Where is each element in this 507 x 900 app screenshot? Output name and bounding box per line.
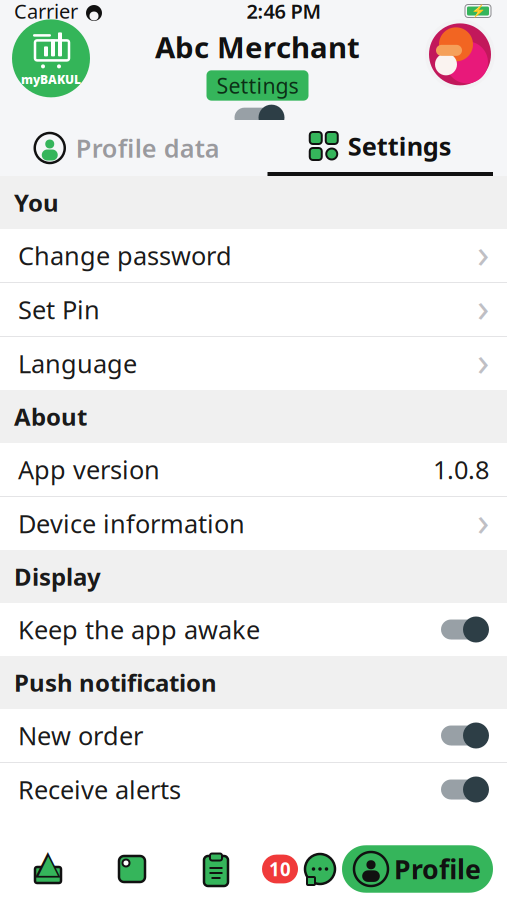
staticText: Keep the app awake: [18, 613, 260, 646]
staticText: Profile: [394, 851, 481, 887]
button[interactable]: Receive alerts: [437, 776, 489, 802]
button[interactable]: Account avatar: [425, 19, 495, 89]
staticText: Set Pin: [18, 293, 100, 326]
staticText: ›: [477, 226, 489, 279]
staticText: ›: [477, 494, 489, 547]
button[interactable]: Settings: [253, 120, 507, 176]
staticText: ▲: [35, 843, 61, 881]
staticText: ›: [477, 280, 489, 333]
staticText: About: [14, 401, 87, 432]
staticText: Display: [14, 561, 101, 592]
staticText: Language: [18, 347, 137, 380]
button[interactable]: Messages, 10 unread: [258, 850, 342, 888]
staticText: App version: [18, 453, 160, 486]
button[interactable]: Toggle settings: [230, 105, 284, 131]
staticText: Abc Merchant: [155, 27, 360, 66]
staticText: Device information: [18, 507, 245, 540]
button[interactable]: New order: [437, 722, 489, 748]
button[interactable]: Keep the app awake: [437, 616, 489, 642]
staticText: Push notification: [14, 667, 217, 698]
staticText: Receive alerts: [18, 773, 181, 806]
staticText: 2:46 PM: [246, 0, 321, 24]
staticText: Settings: [216, 71, 298, 100]
button[interactable]: Profile: [342, 845, 493, 893]
staticText: Carrier: [14, 0, 78, 24]
button[interactable]: Home: [6, 852, 90, 886]
button[interactable]: Language: [0, 337, 507, 390]
button[interactable]: Set Pin: [0, 283, 507, 336]
staticText: ›: [477, 334, 489, 387]
staticText: ▲: [36, 846, 59, 880]
staticText: 10: [269, 857, 291, 881]
button[interactable]: Profile data: [0, 120, 253, 176]
staticText: Settings: [348, 129, 452, 163]
staticText: You: [14, 187, 59, 218]
staticText: myBAKUL: [21, 71, 81, 87]
staticText: Profile data: [76, 131, 220, 165]
staticText: New order: [18, 719, 143, 752]
button[interactable]: Offers: [90, 852, 174, 886]
button[interactable]: Device information: [0, 497, 507, 550]
button[interactable]: Orders: [174, 851, 258, 887]
button[interactable]: Change password: [0, 229, 507, 282]
staticText: 1.0.8: [433, 453, 489, 486]
staticText: ▲: [38, 850, 57, 878]
staticText: ⚡: [470, 4, 485, 18]
staticText: Change password: [18, 239, 232, 272]
